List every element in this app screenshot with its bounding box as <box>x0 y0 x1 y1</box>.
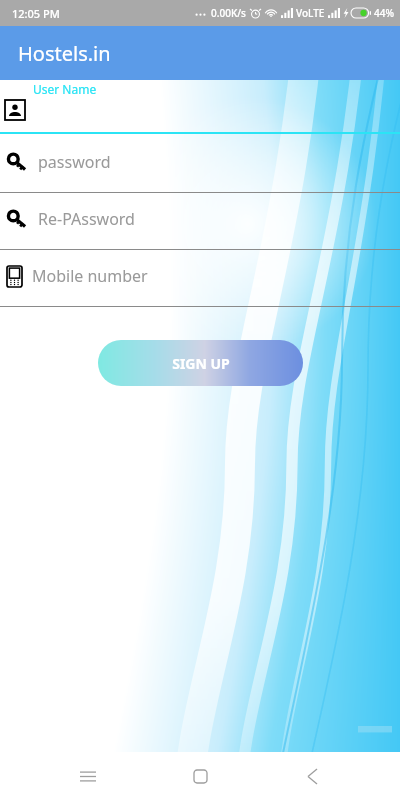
button[interactable]: User Name <box>0 80 400 134</box>
button[interactable]: Recents <box>64 752 112 800</box>
button[interactable]: Home <box>176 752 224 800</box>
staticText: 0.00K/s <box>211 6 246 20</box>
staticText: 12:05 PM <box>12 6 60 21</box>
staticText: Mobile number <box>32 265 148 287</box>
button[interactable]: Mobile number <box>0 250 400 307</box>
button[interactable]: SIGN UP <box>98 340 303 386</box>
staticText: password <box>38 151 111 173</box>
staticText: User Name <box>33 81 97 97</box>
staticText: VoLTE <box>296 6 325 20</box>
staticText: Re-PAssword <box>38 208 135 230</box>
staticText: 44% <box>374 6 394 20</box>
button[interactable]: Re-PAssword <box>0 193 400 250</box>
button[interactable]: Back <box>288 752 336 800</box>
button[interactable]: password <box>0 136 400 193</box>
staticText: SIGN UP <box>172 354 230 373</box>
staticText: Hostels.in <box>18 40 111 67</box>
